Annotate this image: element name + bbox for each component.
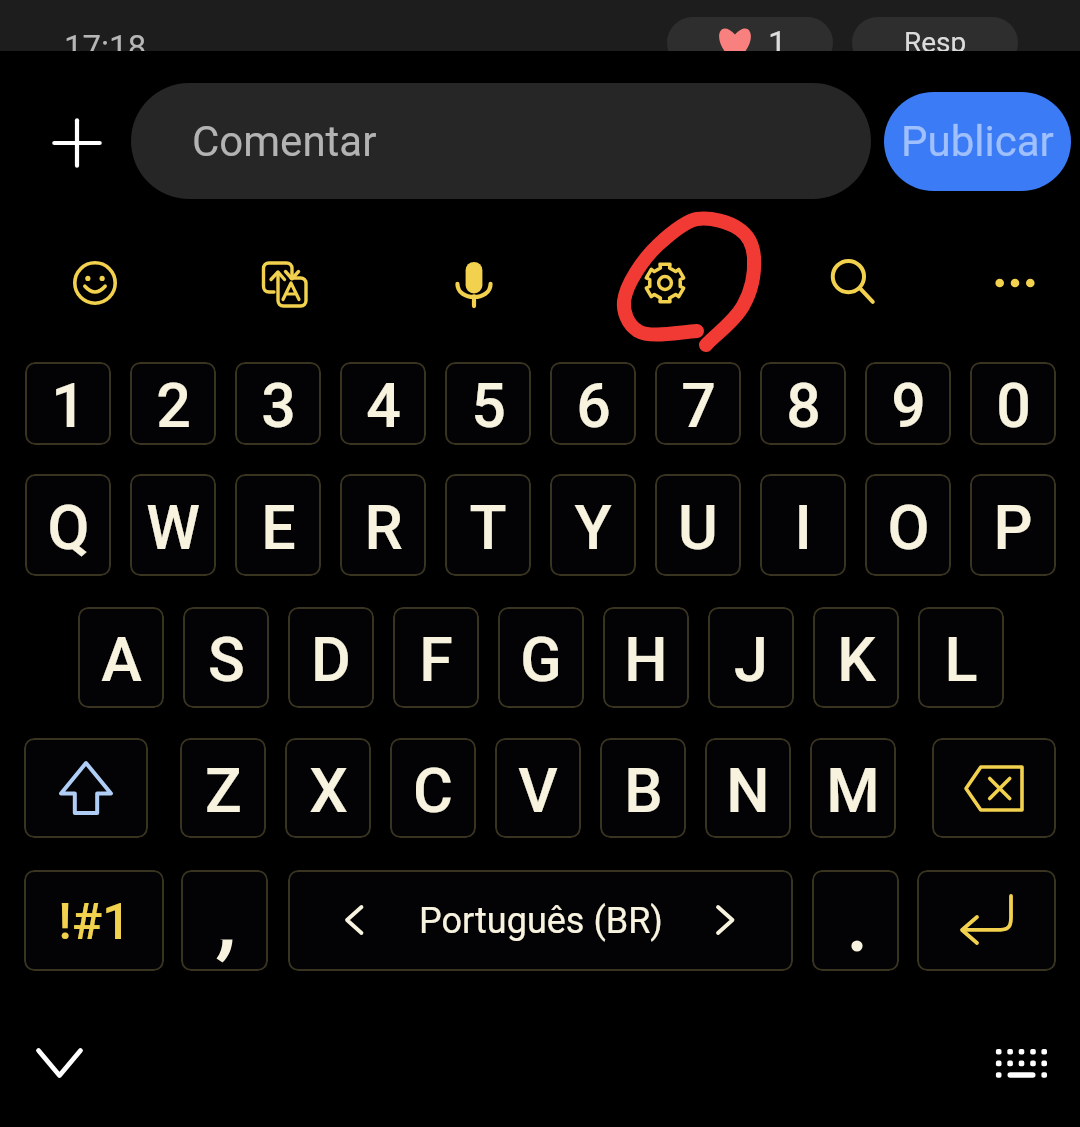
staticText: 3 bbox=[261, 370, 296, 441]
staticText: K bbox=[837, 624, 876, 695]
staticText: !#1 bbox=[58, 893, 131, 952]
staticText: G bbox=[520, 624, 562, 695]
button[interactable]: Q bbox=[25, 474, 111, 576]
staticText: Z bbox=[205, 755, 242, 826]
button[interactable]: 5 bbox=[445, 362, 531, 445]
button[interactable]: 7 bbox=[655, 362, 741, 445]
button[interactable]: V bbox=[495, 738, 581, 838]
staticText: Q bbox=[47, 492, 90, 563]
button[interactable]: 1 bbox=[667, 17, 833, 51]
button[interactable]: Settings bbox=[623, 241, 707, 325]
button[interactable]: 3 bbox=[235, 362, 321, 445]
button[interactable]: H bbox=[603, 607, 689, 708]
button[interactable]: Backspace bbox=[932, 738, 1056, 838]
button[interactable]: Add attachment bbox=[34, 100, 119, 185]
button[interactable]: Period bbox=[812, 870, 899, 971]
staticText: 4 bbox=[366, 370, 401, 441]
button[interactable]: J bbox=[708, 607, 794, 708]
staticText: 9 bbox=[891, 370, 926, 441]
button[interactable]: I bbox=[760, 474, 846, 576]
staticText: Resp bbox=[904, 26, 967, 51]
button[interactable]: T bbox=[445, 474, 531, 576]
button[interactable]: W bbox=[130, 474, 216, 576]
staticText: A bbox=[101, 624, 142, 695]
staticText: W bbox=[146, 492, 200, 563]
button[interactable]: More options bbox=[973, 241, 1057, 325]
button[interactable]: Enter bbox=[917, 870, 1056, 971]
button[interactable]: Comentar bbox=[131, 83, 871, 199]
button[interactable]: 6 bbox=[550, 362, 636, 445]
staticText: 2 bbox=[156, 370, 191, 441]
button[interactable]: 1 bbox=[25, 362, 111, 445]
button[interactable]: Switch keyboard bbox=[980, 1022, 1063, 1105]
staticText: T bbox=[469, 492, 507, 563]
button[interactable]: 8 bbox=[760, 362, 846, 445]
button[interactable]: P bbox=[970, 474, 1056, 576]
staticText: 6 bbox=[576, 370, 611, 441]
button[interactable]: R bbox=[340, 474, 426, 576]
staticText: 1 bbox=[768, 24, 787, 51]
button[interactable]: Z bbox=[180, 738, 266, 838]
staticText: P bbox=[993, 492, 1033, 563]
button[interactable]: 0 bbox=[970, 362, 1056, 445]
button[interactable]: M bbox=[810, 738, 896, 838]
staticText: 0 bbox=[996, 370, 1031, 441]
button[interactable]: Hide keyboard bbox=[18, 1021, 101, 1104]
staticText: 17:18 bbox=[64, 28, 147, 51]
button[interactable]: C bbox=[390, 738, 476, 838]
button[interactable]: Y bbox=[550, 474, 636, 576]
button[interactable]: 2 bbox=[130, 362, 216, 445]
staticText: E bbox=[261, 492, 296, 563]
staticText: S bbox=[208, 624, 245, 695]
button[interactable]: X bbox=[285, 738, 371, 838]
button[interactable]: Publicar bbox=[884, 92, 1071, 191]
staticText: J bbox=[734, 624, 768, 695]
staticText: O bbox=[887, 492, 930, 563]
button[interactable]: L bbox=[918, 607, 1004, 708]
button[interactable]: Voice input bbox=[432, 241, 516, 325]
button[interactable]: K bbox=[813, 607, 899, 708]
staticText: Y bbox=[574, 492, 612, 563]
button[interactable]: 9 bbox=[865, 362, 951, 445]
button[interactable]: N bbox=[705, 738, 791, 838]
staticText: V bbox=[518, 755, 558, 826]
staticText: M bbox=[826, 755, 880, 826]
staticText: N bbox=[726, 755, 770, 826]
staticText: 5 bbox=[471, 370, 506, 441]
button[interactable]: D bbox=[288, 607, 374, 708]
staticText: L bbox=[944, 624, 978, 695]
staticText: Português (BR) bbox=[419, 900, 663, 942]
staticText: B bbox=[624, 755, 663, 826]
staticText: U bbox=[678, 492, 718, 563]
button[interactable]: G bbox=[498, 607, 584, 708]
staticText: Comentar bbox=[192, 117, 377, 166]
staticText: D bbox=[311, 624, 351, 695]
staticText: I bbox=[794, 492, 812, 563]
button[interactable]: Emoji bbox=[53, 241, 137, 325]
button[interactable]: Shift bbox=[24, 738, 148, 838]
button[interactable]: E bbox=[235, 474, 321, 576]
button[interactable]: 4 bbox=[340, 362, 426, 445]
button[interactable]: O bbox=[865, 474, 951, 576]
staticText: Publicar bbox=[901, 117, 1054, 166]
staticText: C bbox=[413, 755, 453, 826]
button[interactable]: !#1 bbox=[24, 870, 164, 971]
staticText: R bbox=[364, 492, 403, 563]
button[interactable]: A bbox=[78, 607, 164, 708]
button[interactable]: Português (BR) bbox=[288, 870, 793, 971]
button[interactable]: Comma bbox=[181, 870, 268, 971]
staticText: H bbox=[624, 624, 668, 695]
button[interactable]: Resp bbox=[852, 17, 1018, 51]
button[interactable]: S bbox=[183, 607, 269, 708]
button[interactable]: B bbox=[600, 738, 686, 838]
staticText: 1 bbox=[51, 370, 86, 441]
staticText: X bbox=[309, 755, 348, 826]
button[interactable]: F bbox=[393, 607, 479, 708]
button[interactable]: Translate bbox=[243, 241, 327, 325]
button[interactable]: U bbox=[655, 474, 741, 576]
staticText: 7 bbox=[681, 370, 716, 441]
staticText: F bbox=[419, 624, 453, 695]
staticText: 8 bbox=[786, 370, 821, 441]
button[interactable]: Search bbox=[811, 241, 895, 325]
